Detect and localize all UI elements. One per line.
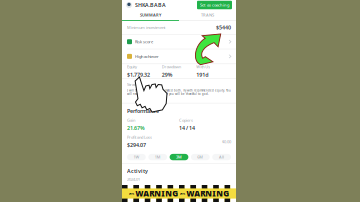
staticText: 6M: [197, 154, 203, 160]
staticText: $294.07: [127, 141, 146, 149]
button[interactable]: 1M: [148, 154, 167, 160]
staticText: Risk score: [135, 39, 153, 44]
button[interactable]: Set as coaching: [197, 1, 232, 9]
staticText: 1W: [133, 154, 139, 160]
staticText: With Us: [196, 64, 210, 69]
staticText: SHKA.BABA: [135, 1, 166, 9]
staticText: 191d: [196, 71, 208, 78]
staticText: 3M: [176, 154, 182, 160]
staticText: 29%: [162, 71, 173, 78]
staticText: WARNING: [186, 188, 229, 199]
staticText: Performance: [127, 107, 159, 115]
staticText: 21.67%: [127, 124, 145, 132]
staticText: Copiers: [179, 118, 193, 123]
staticText: SUMMARY: [140, 12, 161, 18]
staticText: I will trade manual and automated both. …: [127, 89, 231, 96]
staticText: Minimum investment: [127, 25, 165, 30]
button[interactable]: 3M: [170, 154, 188, 160]
staticText: Equity: [127, 64, 137, 69]
staticText: Gain: [127, 118, 135, 123]
staticText: Set as coaching: [200, 2, 229, 8]
button[interactable]: 6M: [191, 154, 210, 160]
staticText: 2024-01: [127, 177, 140, 182]
staticText: Drawdown: [162, 64, 181, 69]
button[interactable]: High achiever: [122, 49, 236, 63]
staticText: TRANS: [201, 12, 214, 18]
staticText: $5440: [216, 24, 231, 31]
staticText: Strategy: [127, 82, 141, 87]
staticText: High achiever: [135, 54, 159, 59]
staticText: 14 / 14: [179, 124, 195, 132]
staticText: $0.00: [222, 139, 231, 144]
staticText: SAFE: [180, 192, 185, 195]
button[interactable]: All: [212, 154, 231, 160]
staticText: 1M: [155, 154, 161, 160]
button[interactable]: Risk score: [122, 35, 236, 49]
staticText: $1,779.32: [127, 71, 150, 78]
staticText: SAFE: [129, 192, 134, 195]
staticText: All: [219, 154, 224, 160]
button[interactable]: 1W: [127, 154, 146, 160]
button[interactable]: SUMMARY: [122, 10, 179, 21]
staticText: WARNING: [135, 188, 178, 199]
staticText: Profit and Loss: [127, 135, 152, 140]
staticText: Activity: [127, 167, 148, 174]
button[interactable]: TRANS: [179, 10, 236, 21]
